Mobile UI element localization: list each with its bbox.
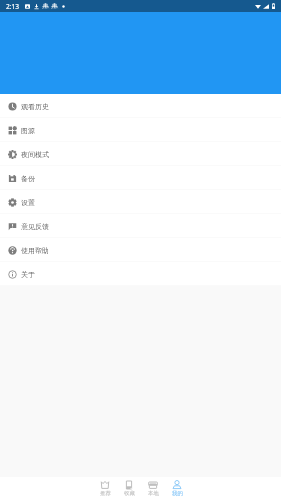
staticText: 使用帮助 xyxy=(21,246,49,255)
button[interactable]: 备份 xyxy=(0,166,281,190)
staticText: 关于 xyxy=(21,270,35,279)
staticText: 推荐 xyxy=(100,490,111,497)
button[interactable]: 关于 xyxy=(0,262,281,286)
staticText: 备份 xyxy=(21,174,35,183)
staticText: 意见反馈 xyxy=(21,222,49,231)
staticText: 夜间模式 xyxy=(21,150,49,159)
staticText: 收藏 xyxy=(124,490,135,497)
button[interactable]: 我的 xyxy=(165,478,189,500)
button[interactable]: 推荐 xyxy=(93,478,117,500)
staticText: 2:13 xyxy=(6,2,20,11)
button[interactable]: 本地 xyxy=(141,478,165,500)
staticText: 本地 xyxy=(148,490,159,497)
staticText: 我的 xyxy=(172,490,183,497)
button[interactable]: 收藏 xyxy=(117,478,141,500)
staticText: 设置 xyxy=(21,198,35,207)
button[interactable]: 意见反馈 xyxy=(0,214,281,238)
staticText: 图源 xyxy=(21,126,35,135)
button[interactable]: 使用帮助 xyxy=(0,238,281,262)
button[interactable]: 设置 xyxy=(0,190,281,214)
button[interactable]: 图源 xyxy=(0,118,281,142)
button[interactable]: 观看历史 xyxy=(0,94,281,118)
button[interactable]: 夜间模式 xyxy=(0,142,281,166)
staticText: 观看历史 xyxy=(21,102,49,111)
